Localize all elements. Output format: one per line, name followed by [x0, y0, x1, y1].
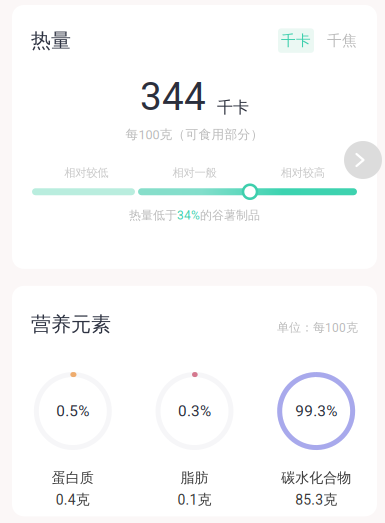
- staticText: 单位：每100克: [277, 320, 358, 335]
- staticText: 的谷薯制品: [200, 208, 260, 223]
- staticText: 营养元素: [31, 312, 111, 337]
- staticText: 蛋白质: [52, 469, 94, 487]
- button[interactable]: 千卡: [278, 28, 314, 53]
- staticText: 0.1克: [177, 491, 211, 508]
- staticText: 34%: [177, 208, 200, 222]
- staticText: 脂肪: [180, 469, 208, 487]
- staticText: 0.4克: [56, 491, 90, 508]
- staticText: 0.5%: [56, 402, 89, 420]
- button[interactable]: 千焦: [327, 28, 357, 53]
- staticText: 每100克（可食用部分）: [125, 126, 263, 142]
- staticText: 99.3%: [295, 402, 337, 420]
- button[interactable]: Next: [344, 141, 382, 179]
- staticText: 千卡: [281, 31, 311, 50]
- staticText: 相对较低: [64, 165, 108, 180]
- staticText: 热量低于: [129, 208, 177, 223]
- staticText: 344: [140, 74, 206, 119]
- staticText: 热量: [31, 28, 71, 53]
- staticText: 碳水化合物: [281, 469, 351, 487]
- staticText: 千卡: [217, 97, 249, 118]
- staticText: 85.3克: [295, 491, 337, 508]
- staticText: 0.3%: [178, 402, 211, 420]
- staticText: 千焦: [327, 31, 357, 50]
- staticText: 相对一般: [172, 165, 216, 180]
- staticText: 相对较高: [281, 165, 325, 180]
